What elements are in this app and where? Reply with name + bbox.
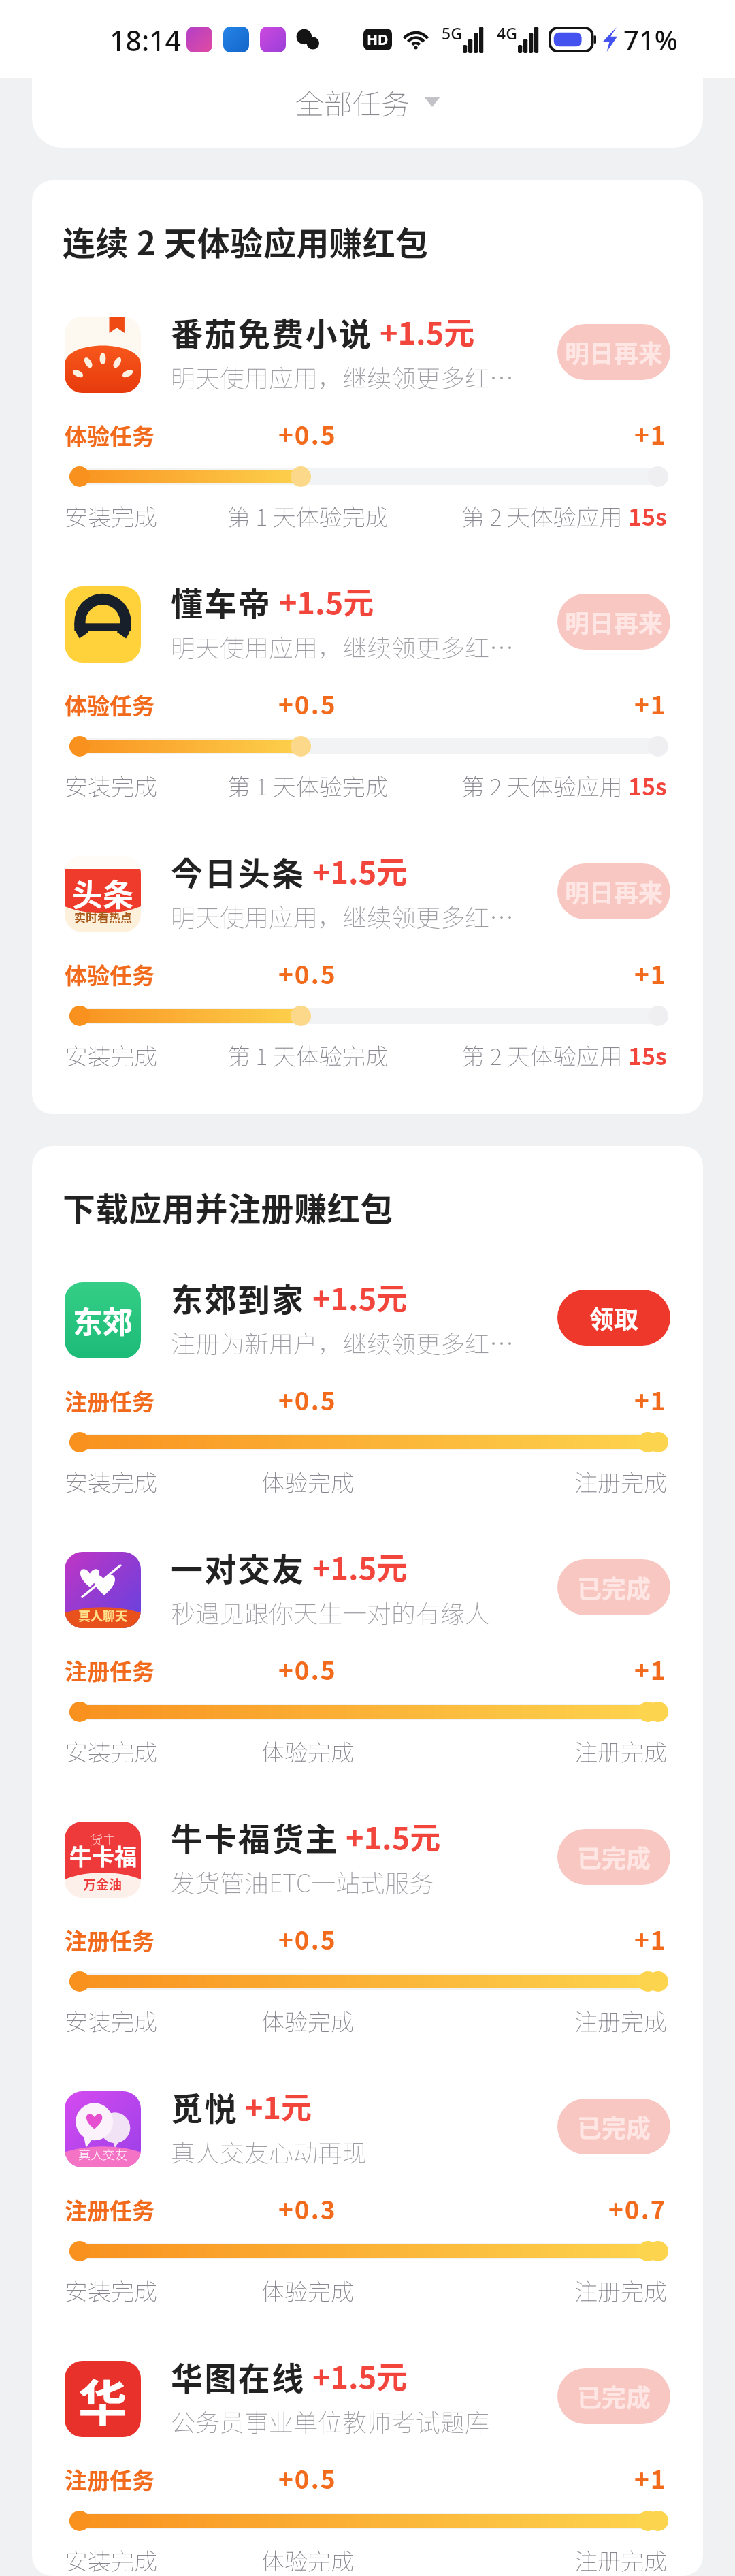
staticText: 一对交友 [171, 1544, 306, 1590]
staticText: +1.5元 [312, 1275, 408, 1319]
staticText: 明天使用应用，继续领更多红… [171, 359, 514, 394]
staticText: +0.5 [278, 1381, 337, 1418]
button[interactable]: 明日再来 [557, 863, 670, 919]
staticText: 安装完成 [65, 769, 157, 802]
staticText: 明天使用应用，继续领更多红… [171, 898, 514, 934]
staticText: 今日头条 [171, 848, 306, 894]
staticText: 18:14 [110, 21, 181, 59]
staticText: +1 [634, 2460, 667, 2496]
staticText: 真人交友心动再现 [171, 2133, 367, 2169]
staticText: +0.5 [278, 1651, 337, 1687]
staticText: 安装完成 [65, 1038, 157, 1072]
staticText: 真人聊天 [78, 1606, 127, 1624]
staticText: 货主 [90, 1830, 116, 1849]
staticText: +0.7 [608, 2190, 667, 2227]
staticText: 第 1 天体验完成 [227, 769, 389, 802]
staticText: 万金油 [83, 1875, 122, 1894]
staticText: +1 [634, 415, 667, 452]
staticText: 体验完成 [261, 2543, 354, 2576]
staticText: 全部任务 [295, 81, 410, 123]
staticText: +1.5元 [380, 309, 475, 353]
staticText: 安装完成 [65, 499, 157, 532]
button[interactable]: 东郊 [32, 1282, 703, 1498]
staticText: 实时看热点 [74, 908, 132, 925]
staticText: 15s [628, 769, 667, 802]
staticText: 第 1 天体验完成 [227, 1038, 389, 1072]
staticText: 体验任务 [65, 958, 154, 991]
staticText: 已完成 [577, 2379, 651, 2414]
staticText: HD [367, 30, 389, 50]
button[interactable]: 已完成 [557, 2368, 670, 2424]
staticText: 体验完成 [261, 1465, 354, 1498]
button[interactable]: 领取 [557, 1290, 670, 1346]
staticText: 东郊到家 [171, 1274, 306, 1320]
button[interactable]: 华 [32, 2361, 703, 2576]
staticText: 注册任务 [65, 2193, 154, 2226]
staticText: 安装完成 [65, 2543, 157, 2576]
staticText: 注册完成 [574, 2004, 667, 2037]
staticText: 15s [628, 1038, 667, 1072]
staticText: 体验完成 [261, 2004, 354, 2037]
staticText: +0.5 [278, 955, 337, 991]
staticText: 体验完成 [261, 1734, 354, 1768]
button[interactable]: 明日再来 [557, 594, 670, 650]
staticText: +0.5 [278, 1920, 337, 1957]
button[interactable]: 已完成 [557, 2099, 670, 2154]
staticText: 东郊 [73, 1299, 133, 1342]
staticText: 连续 2 天体验应用赚红包 [63, 217, 429, 265]
staticText: +1.5元 [346, 1814, 441, 1858]
button[interactable]: 真人交友 [32, 2091, 703, 2307]
staticText: 体验任务 [65, 419, 154, 451]
staticText: +1 [634, 685, 667, 722]
button[interactable]: 全部任务 [295, 81, 440, 123]
staticText: +1.5元 [279, 579, 374, 623]
button[interactable]: 真人聊天 [32, 1552, 703, 1768]
button[interactable]: 明日再来 [557, 324, 670, 380]
staticText: 发货管油ETC一站式服务 [171, 1864, 434, 1899]
staticText: 明天使用应用，继续领更多红… [171, 629, 514, 664]
staticText: 华 [78, 2364, 128, 2434]
staticText: +1 [634, 1920, 667, 1957]
staticText: +1.5元 [312, 2353, 408, 2398]
staticText: 明日再来 [565, 604, 664, 639]
button[interactable]: 懂车帝 [32, 586, 703, 802]
staticText: 第 1 天体验完成 [227, 499, 389, 532]
staticText: 4G [497, 22, 517, 44]
staticText: 注册任务 [65, 1384, 154, 1417]
button[interactable]: 货主 [32, 1822, 703, 2037]
staticText: 安装完成 [65, 1465, 157, 1498]
staticText: 注册任务 [65, 1654, 154, 1687]
button[interactable]: 已完成 [557, 1559, 670, 1615]
staticText: +1.5元 [312, 848, 408, 893]
staticText: 明日再来 [565, 874, 664, 909]
staticText: 安装完成 [65, 2004, 157, 2037]
staticText: 明日再来 [565, 334, 664, 370]
staticText: 注册完成 [574, 2543, 667, 2576]
staticText: 第 2 天体验应用 [461, 769, 628, 802]
staticText: 注册为新用户，继续领更多红… [171, 1324, 514, 1360]
staticText: 注册完成 [574, 1734, 667, 1768]
staticText: 安装完成 [65, 2274, 157, 2307]
staticText: 牛卡福 [69, 1839, 137, 1872]
staticText: +1.5元 [312, 1544, 408, 1589]
staticText: +1 [634, 955, 667, 991]
staticText: 头条 [72, 871, 134, 915]
staticText: 公务员事业单位教师考试题库 [171, 2403, 490, 2438]
button[interactable]: 番茄免费小说 [32, 317, 703, 532]
button[interactable]: 头条 [32, 856, 703, 1072]
staticText: +1 [634, 1651, 667, 1687]
staticText: 秒遇见跟你天生一对的有缘人 [171, 1594, 490, 1629]
staticText: 已完成 [577, 1839, 651, 1875]
staticText: 注册完成 [574, 1465, 667, 1498]
staticText: +1元 [245, 2084, 312, 2128]
staticText: +0.5 [278, 415, 337, 452]
staticText: 下载应用并注册赚红包 [63, 1183, 394, 1230]
staticText: 真人交友 [78, 2145, 127, 2163]
staticText: +0.5 [278, 685, 337, 722]
staticText: 安装完成 [65, 1734, 157, 1768]
staticText: 牛卡福货主 [171, 1813, 339, 1860]
staticText: 番茄免费小说 [171, 308, 373, 355]
staticText: 注册任务 [65, 2463, 154, 2496]
staticText: 5G [442, 22, 462, 44]
button[interactable]: 已完成 [557, 1829, 670, 1885]
